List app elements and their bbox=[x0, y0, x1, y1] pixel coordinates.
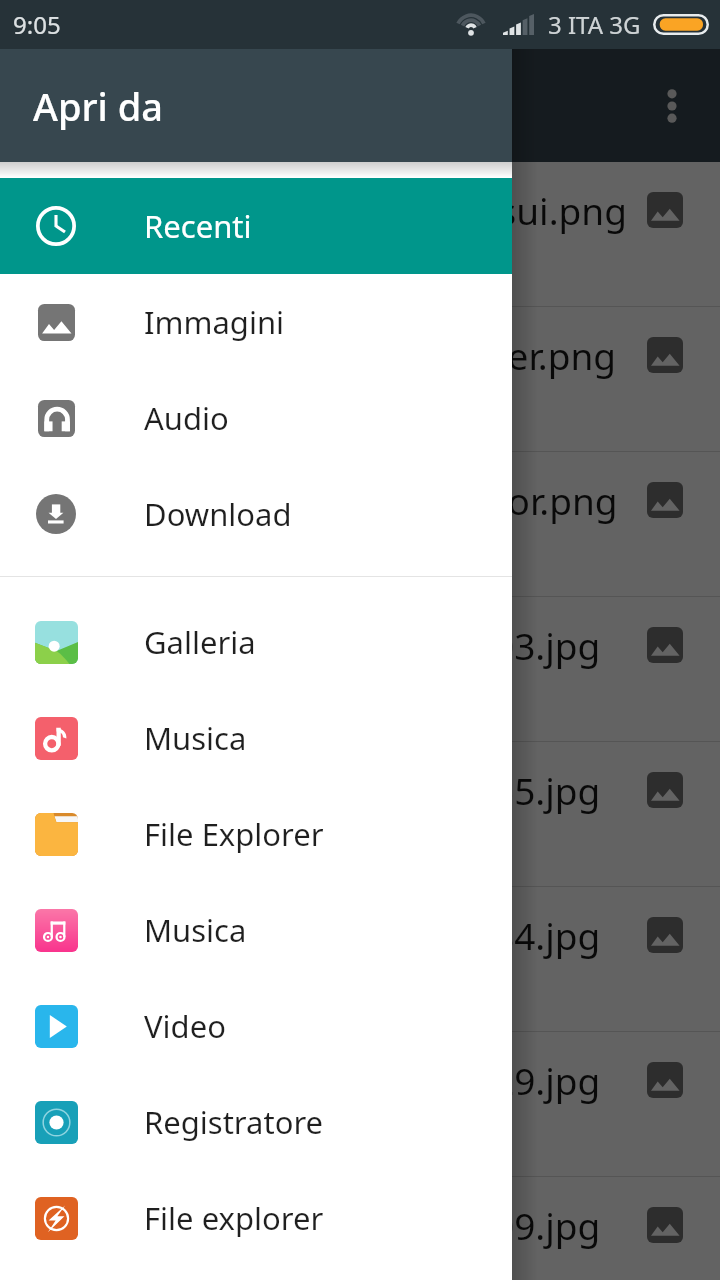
button[interactable]: Immagini bbox=[0, 274, 512, 370]
staticText: 9:05 bbox=[13, 8, 61, 41]
staticText: Immagini bbox=[144, 301, 285, 343]
button[interactable]: IMG_20161231_2213184.jpg bbox=[0, 887, 720, 1031]
staticText: IMG_20170102_1746155.jpg bbox=[112, 765, 601, 815]
button[interactable]: Download bbox=[0, 466, 512, 562]
button[interactable]: Recenti bbox=[0, 178, 512, 274]
button[interactable]: File explorer bbox=[0, 1170, 512, 1266]
button[interactable]: Video bbox=[0, 978, 512, 1074]
button[interactable]: Screenshot_2017-01-01-12-33-or.png bbox=[0, 452, 720, 596]
staticText: Musica bbox=[144, 717, 247, 759]
staticText: 3 ITA 3G bbox=[548, 8, 641, 41]
button[interactable]: IMG_20161229_1437109.jpg bbox=[0, 1177, 720, 1280]
button[interactable]: Galleria bbox=[0, 594, 512, 690]
staticText: IMG_20170103_0905103.jpg bbox=[112, 620, 601, 670]
button[interactable]: IMG_20170103_0905103.jpg bbox=[0, 597, 720, 741]
staticText: Screenshot_2017-01-03-09-05-sui.png bbox=[0, 185, 627, 235]
staticText: 14:23 1,2 MB bbox=[32, 1112, 216, 1150]
staticText: IMG_20161230_1812129.jpg bbox=[112, 1055, 601, 1105]
button[interactable]: Registratore bbox=[0, 1074, 512, 1170]
staticText: Screenshot_2017-01-01-12-33-or.png bbox=[0, 475, 618, 525]
staticText: Galleria bbox=[144, 621, 256, 663]
button[interactable]: Screenshot_2017-01-03-09-05-sui.png bbox=[0, 162, 720, 306]
button[interactable]: Musica bbox=[0, 882, 512, 978]
staticText: Video bbox=[144, 1005, 226, 1047]
staticText: File Explorer bbox=[144, 813, 324, 855]
staticText: IMG_20161231_2213184.jpg bbox=[112, 910, 601, 960]
staticText: File explorer bbox=[144, 1197, 324, 1239]
staticText: Download bbox=[144, 493, 292, 535]
staticText: IMG_20161229_1437109.jpg bbox=[112, 1200, 601, 1250]
button[interactable]: Screenshot_2017-01-02-17-46-er.png bbox=[0, 307, 720, 451]
staticText: 14:23 1,2 MB bbox=[32, 242, 216, 280]
staticText: Screenshot_2017-01-02-17-46-er.png bbox=[0, 330, 617, 380]
staticText: 14:23 1,2 MB bbox=[32, 822, 216, 860]
button[interactable]: More options bbox=[644, 78, 700, 134]
staticText: Recenti bbox=[144, 205, 252, 247]
button[interactable]: IMG_20170102_1746155.jpg bbox=[0, 742, 720, 886]
button[interactable]: Musica bbox=[0, 690, 512, 786]
button[interactable]: File Explorer bbox=[0, 786, 512, 882]
button[interactable]: IMG_20161230_1812129.jpg bbox=[0, 1032, 720, 1176]
staticText: 14:23 1,2 MB bbox=[32, 532, 216, 570]
staticText: Registratore bbox=[144, 1101, 324, 1143]
staticText: 14:23 1,2 MB bbox=[32, 387, 216, 425]
button[interactable]: Audio bbox=[0, 370, 512, 466]
staticText: Apri da bbox=[33, 80, 163, 132]
staticText: Musica bbox=[144, 909, 247, 951]
staticText: Audio bbox=[144, 397, 229, 439]
